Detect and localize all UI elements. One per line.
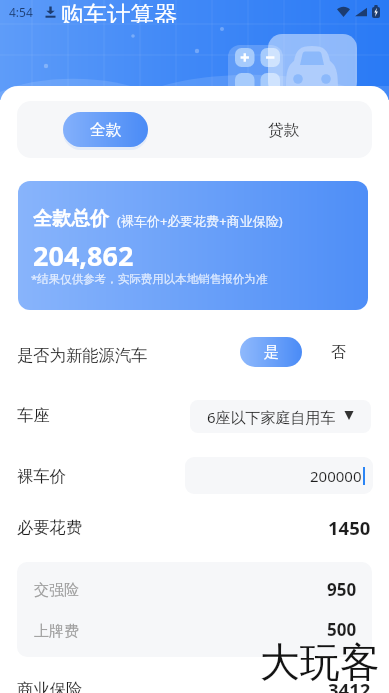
staticText: 950 xyxy=(327,578,357,601)
staticText: 商业保险 xyxy=(17,679,83,693)
staticText: 车座 xyxy=(17,405,50,426)
staticText: 裸车价 xyxy=(17,466,66,487)
button[interactable]: 全款 xyxy=(63,112,148,147)
staticText: 上牌费 xyxy=(34,622,79,641)
button[interactable]: 6座以下家庭自用车 xyxy=(190,400,371,433)
staticText: 是否为新能源汽车 xyxy=(17,345,148,366)
staticText: 大玩客 xyxy=(260,637,380,687)
staticText: 200000 xyxy=(310,466,362,486)
staticText: 是 xyxy=(264,343,279,362)
staticText: 全款 xyxy=(90,120,121,140)
staticText: 交强险 xyxy=(34,581,79,600)
staticText: 贷款 xyxy=(268,120,299,140)
button[interactable]: 贷款 xyxy=(194,101,372,158)
staticText: 3412 xyxy=(328,677,371,693)
other: Download xyxy=(44,5,57,18)
staticText: 1450 xyxy=(328,515,371,540)
staticText: 否 xyxy=(331,343,346,362)
staticText: 购车计算器 xyxy=(60,0,178,23)
button[interactable]: 是 xyxy=(240,337,302,367)
staticText: 500 xyxy=(327,618,357,641)
staticText: 4:54 xyxy=(9,4,33,20)
staticText: 6座以下家庭自用车 xyxy=(207,407,336,427)
staticText: 204,862 xyxy=(33,237,134,274)
staticText: 必要花费 xyxy=(17,517,83,538)
button[interactable]: 200000 xyxy=(185,457,373,494)
staticText: (裸车价+必要花费+商业保险) xyxy=(117,212,283,230)
button[interactable]: 否 xyxy=(318,337,358,367)
staticText: 全款总价 xyxy=(33,207,109,231)
staticText: *结果仅供参考，实际费用以本地销售报价为准 xyxy=(31,271,268,287)
